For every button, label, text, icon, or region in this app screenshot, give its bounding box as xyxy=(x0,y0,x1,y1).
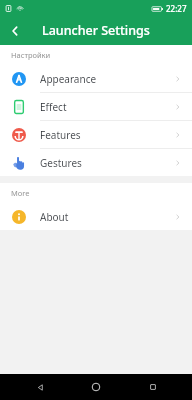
staticText: Gestures xyxy=(40,156,82,170)
button[interactable]: About xyxy=(0,203,192,230)
button[interactable]: Back xyxy=(0,16,30,45)
staticText: Настройки xyxy=(11,50,51,60)
button[interactable]: Home xyxy=(79,374,113,400)
button[interactable]: Features xyxy=(0,121,192,148)
staticText: Effect xyxy=(40,100,67,114)
button[interactable]: Back xyxy=(23,374,57,400)
staticText: 22:27 xyxy=(166,3,187,14)
staticText: Launcher Settings xyxy=(42,22,150,39)
button[interactable]: Appearance xyxy=(0,65,192,92)
staticText: Features xyxy=(40,128,81,142)
button[interactable]: Gestures xyxy=(0,149,192,176)
button[interactable]: Recent apps xyxy=(136,374,170,400)
staticText: About xyxy=(40,210,69,224)
button[interactable]: Effect xyxy=(0,93,192,120)
staticText: Appearance xyxy=(40,72,97,86)
staticText: More xyxy=(11,188,30,198)
